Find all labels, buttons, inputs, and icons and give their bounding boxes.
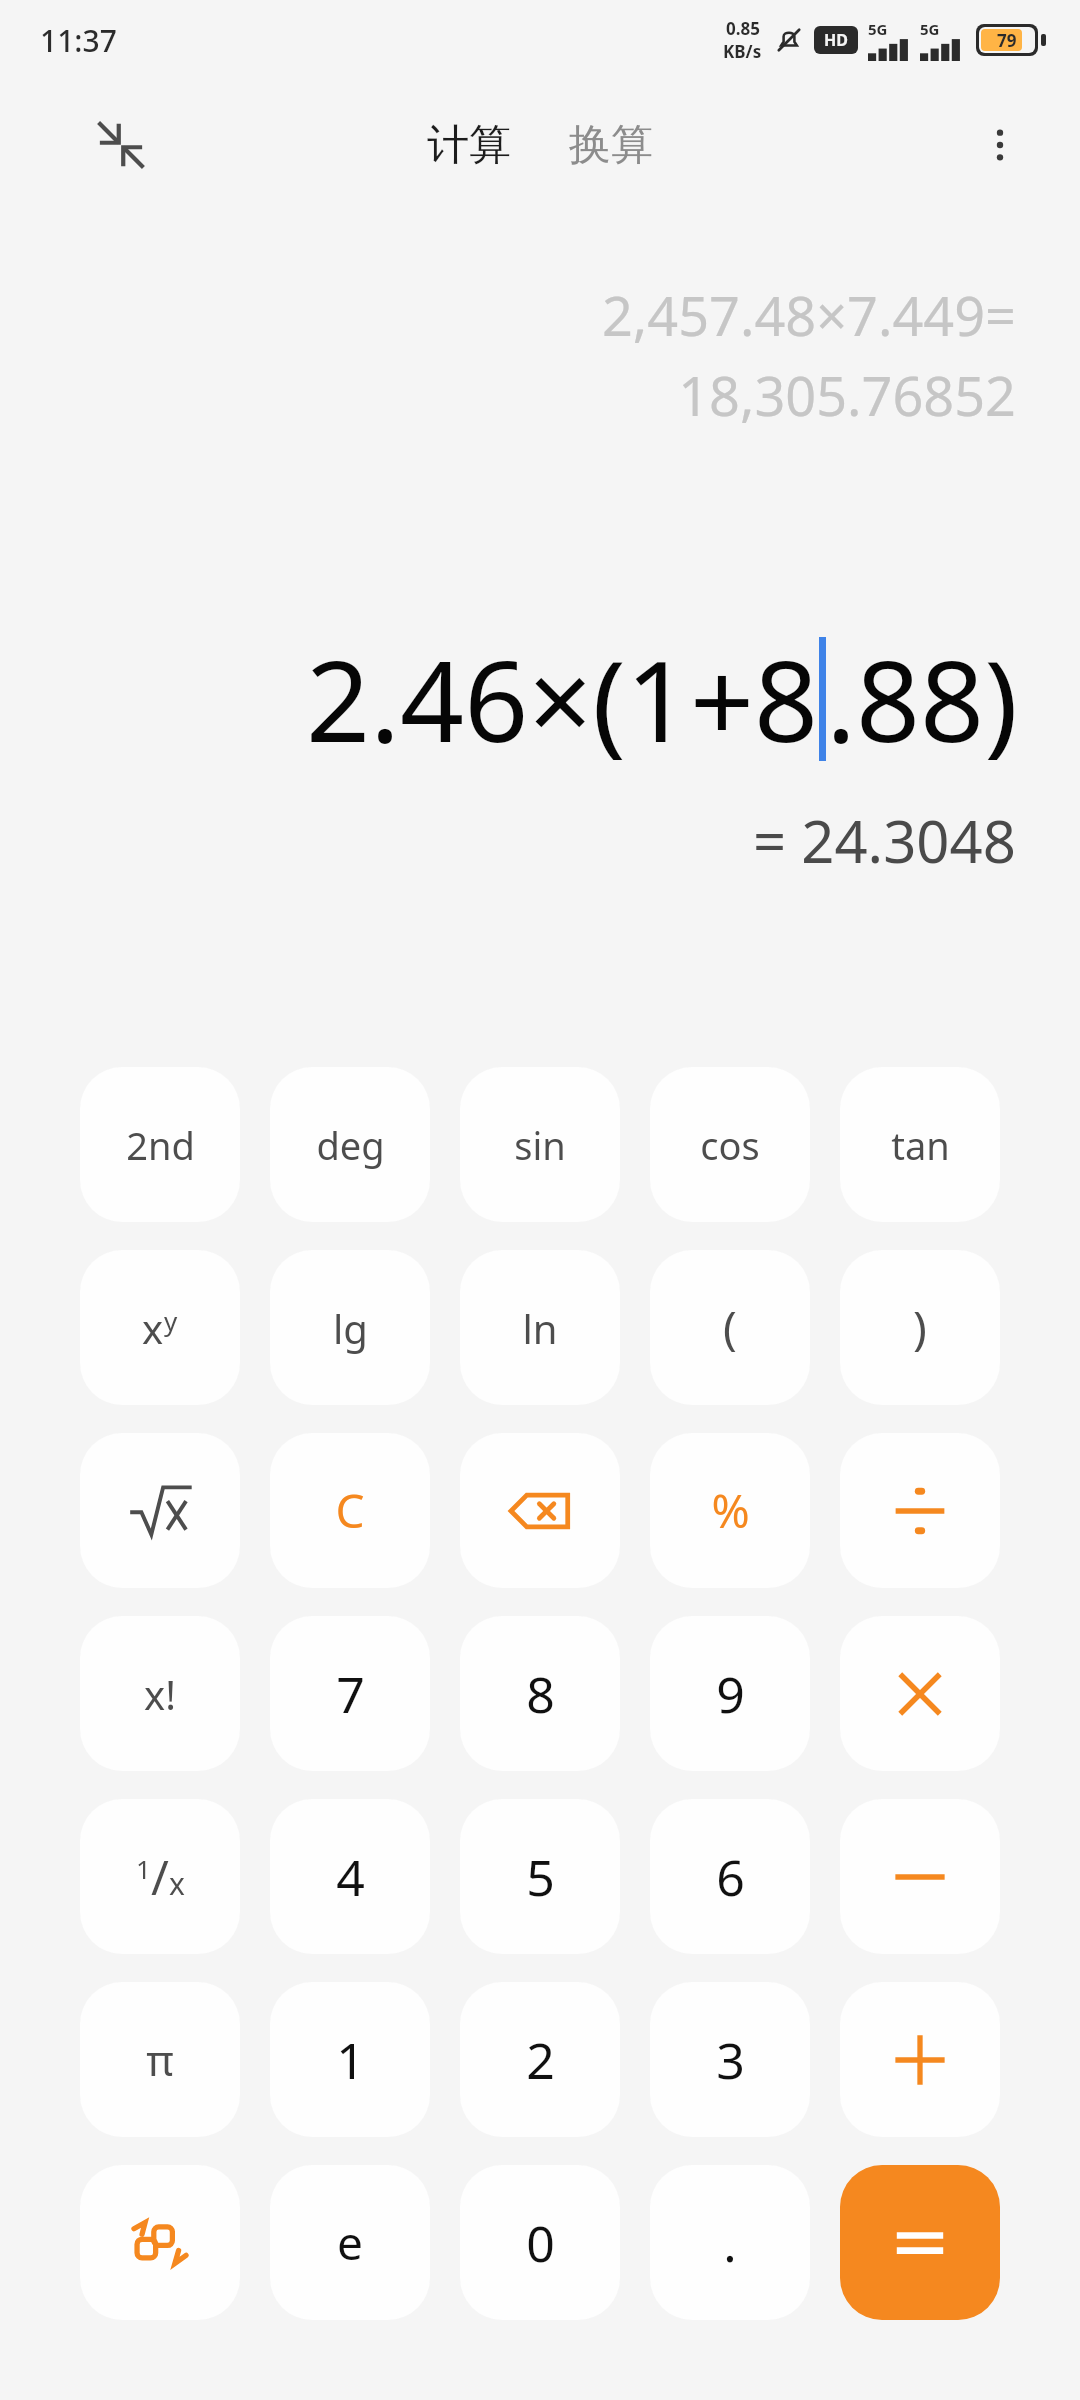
staticText: 换算 <box>569 119 653 172</box>
button[interactable]: Minus <box>840 1799 1000 1954</box>
staticText: 2.46×(1+8 <box>306 622 819 775</box>
button[interactable]: 8 <box>460 1616 620 1771</box>
button[interactable]: Unit conversion <box>80 2165 240 2320</box>
button[interactable]: ln <box>460 1250 620 1405</box>
button[interactable]: 1 <box>270 1982 430 2137</box>
staticText: x <box>142 1301 164 1355</box>
staticText: y <box>164 1303 178 1338</box>
staticText: tan <box>891 1119 950 1171</box>
button[interactable]: x to the power y <box>80 1250 240 1405</box>
staticText: KB/s <box>723 40 762 63</box>
button[interactable]: x! <box>80 1616 240 1771</box>
button[interactable]: 3 <box>650 1982 810 2137</box>
staticText: 6 <box>716 1843 745 1911</box>
button[interactable]: Equals <box>840 2165 1000 2320</box>
button[interactable]: 7 <box>270 1616 430 1771</box>
staticText: % <box>711 1479 750 1542</box>
button[interactable]: e <box>270 2165 430 2320</box>
staticText: 2,457.48×7.449= <box>601 278 1016 352</box>
staticText: 18,305.76852 <box>678 358 1016 432</box>
staticText: deg <box>316 1119 385 1171</box>
button[interactable]: 9 <box>650 1616 810 1771</box>
button[interactable]: 2nd <box>80 1067 240 1222</box>
staticText: 2nd <box>126 1119 195 1171</box>
staticText: ln <box>522 1301 558 1355</box>
staticText: 79 <box>997 29 1017 51</box>
staticText: lg <box>333 1301 368 1355</box>
staticText: x <box>169 1863 185 1904</box>
button[interactable]: sin <box>460 1067 620 1222</box>
button[interactable]: 计算 <box>417 113 521 178</box>
staticText: 4 <box>336 1843 365 1911</box>
staticText: x! <box>144 1667 176 1721</box>
button[interactable]: π <box>80 1982 240 2137</box>
staticText: C <box>335 1479 365 1542</box>
staticText: 5G <box>868 19 888 39</box>
staticText: 7 <box>336 1660 365 1728</box>
staticText: = 24.3048 <box>753 801 1016 880</box>
staticText: 1 <box>336 2026 365 2094</box>
button[interactable]: 4 <box>270 1799 430 1954</box>
button[interactable]: tan <box>840 1067 1000 1222</box>
staticText: sin <box>514 1119 566 1171</box>
staticText: ) <box>913 1296 927 1359</box>
staticText: .88) <box>826 622 1018 775</box>
button[interactable]: Divide <box>840 1433 1000 1588</box>
staticText: 2 <box>526 2026 555 2094</box>
button[interactable]: Collapse <box>78 102 164 188</box>
button[interactable]: 5 <box>460 1799 620 1954</box>
staticText: cos <box>700 1119 760 1171</box>
button[interactable]: Plus <box>840 1982 1000 2137</box>
button[interactable]: Backspace <box>460 1433 620 1588</box>
staticText: e <box>337 2211 363 2274</box>
staticText: 5G <box>920 19 940 39</box>
staticText: 5 <box>526 1843 555 1911</box>
staticText: / <box>151 1844 169 1909</box>
staticText: 1 <box>136 1851 151 1886</box>
button[interactable]: 6 <box>650 1799 810 1954</box>
button[interactable]: cos <box>650 1067 810 1222</box>
button[interactable]: Multiply <box>840 1616 1000 1771</box>
button[interactable]: 2 <box>460 1982 620 2137</box>
staticText: 计算 <box>427 119 511 172</box>
button[interactable]: . <box>650 2165 810 2320</box>
button[interactable]: reciprocal <box>80 1799 240 1954</box>
staticText: 11:37 <box>40 20 117 61</box>
button[interactable]: Square root <box>80 1433 240 1588</box>
staticText: HD <box>824 29 848 51</box>
button[interactable]: lg <box>270 1250 430 1405</box>
staticText: π <box>146 2031 174 2088</box>
button[interactable]: ) <box>840 1250 1000 1405</box>
staticText: 3 <box>716 2026 745 2094</box>
button[interactable]: % <box>650 1433 810 1588</box>
staticText: . <box>723 2209 737 2277</box>
button[interactable]: 0 <box>460 2165 620 2320</box>
staticText: ( <box>723 1296 737 1359</box>
button[interactable]: C <box>270 1433 430 1588</box>
button[interactable]: More options <box>960 105 1040 185</box>
staticText: 8 <box>526 1660 555 1728</box>
button[interactable]: 换算 <box>559 113 663 178</box>
button[interactable]: ( <box>650 1250 810 1405</box>
staticText: 0 <box>526 2209 555 2277</box>
button[interactable]: deg <box>270 1067 430 1222</box>
staticText: 9 <box>716 1660 745 1728</box>
staticText: 0.85 <box>726 17 760 40</box>
